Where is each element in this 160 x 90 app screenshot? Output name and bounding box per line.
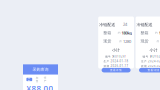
staticText: 编号 SKU10242 <box>142 55 160 58</box>
staticText: 采购查询 <box>32 67 48 72</box>
staticText: 件 <box>119 40 122 43</box>
staticText: 现货 <box>103 39 111 43</box>
staticText: 编号 SKU10241 <box>105 55 127 58</box>
button[interactable]: 全部 <box>26 78 32 81</box>
staticText: 冷链配送 <box>99 22 115 27</box>
button[interactable]: 查看详情 <box>102 68 131 72</box>
staticText: 在售 <box>36 76 39 83</box>
staticText: 180kg <box>121 30 132 35</box>
staticText: 现货 <box>140 39 148 43</box>
staticText: 1280 <box>123 39 131 44</box>
staticText: 生产 2024-02-18 <box>141 59 160 63</box>
staticText: 约 <box>155 31 158 34</box>
staticText: 效期 2026-02-17 <box>141 64 160 68</box>
staticText: 查看详情 <box>147 68 159 72</box>
staticText: 整箱 <box>103 30 111 35</box>
staticText: 小计 <box>149 48 157 53</box>
button[interactable]: 停产 <box>42 78 48 81</box>
staticText: 整箱 <box>140 30 148 35</box>
button[interactable]: 在售 <box>34 78 40 81</box>
button[interactable]: 查看详情 <box>139 68 160 72</box>
staticText: 24 <box>123 22 127 27</box>
staticText: 全部 <box>28 76 31 83</box>
staticText: ¥88.00 <box>26 83 53 90</box>
staticText: 小计 <box>112 48 120 53</box>
staticText: 180kg <box>159 30 160 35</box>
staticText: 约 <box>118 31 121 34</box>
staticText: 冷链配送 <box>136 22 152 27</box>
staticText: 生产 2024-01-18 <box>104 59 129 63</box>
staticText: 效期 2026-01-17 <box>104 64 129 68</box>
staticText: 查看详情 <box>110 68 122 72</box>
staticText: 停产 <box>44 76 47 83</box>
staticText: 件 <box>157 40 160 43</box>
